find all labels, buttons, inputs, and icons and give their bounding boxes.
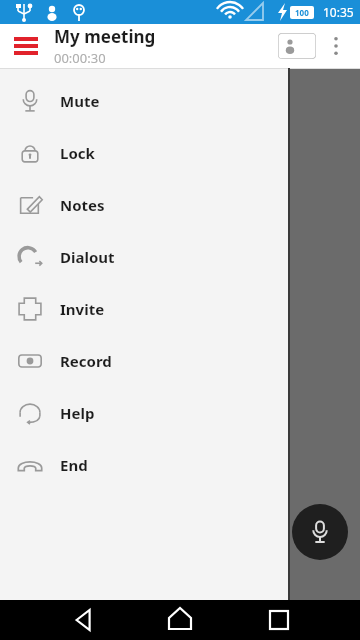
staticText: 10:35: [323, 4, 354, 20]
staticText: Mute: [60, 91, 100, 111]
button[interactable]: Record: [0, 335, 288, 387]
button[interactable]: Invite: [0, 283, 288, 335]
staticText: 00:00:30: [54, 49, 106, 67]
button[interactable]: More options: [318, 28, 354, 64]
staticText: Dialout: [60, 247, 115, 267]
button[interactable]: Mute: [0, 75, 288, 127]
button[interactable]: End: [0, 439, 288, 491]
staticText: 100: [295, 7, 309, 18]
button[interactable]: Help: [0, 387, 288, 439]
staticText: Record: [60, 351, 112, 371]
button[interactable]: Open navigation drawer: [8, 28, 44, 64]
staticText: Lock: [60, 143, 95, 163]
button[interactable]: Mute microphone: [292, 504, 348, 560]
staticText: My meeting: [54, 25, 156, 48]
button[interactable]: Participants: [278, 33, 316, 59]
button[interactable]: Dialout: [0, 231, 288, 283]
staticText: End: [60, 455, 88, 475]
staticText: Help: [60, 403, 95, 423]
staticText: Notes: [60, 195, 105, 215]
button[interactable]: Lock: [0, 127, 288, 179]
staticText: Invite: [60, 299, 105, 319]
button[interactable]: Notes: [0, 179, 288, 231]
